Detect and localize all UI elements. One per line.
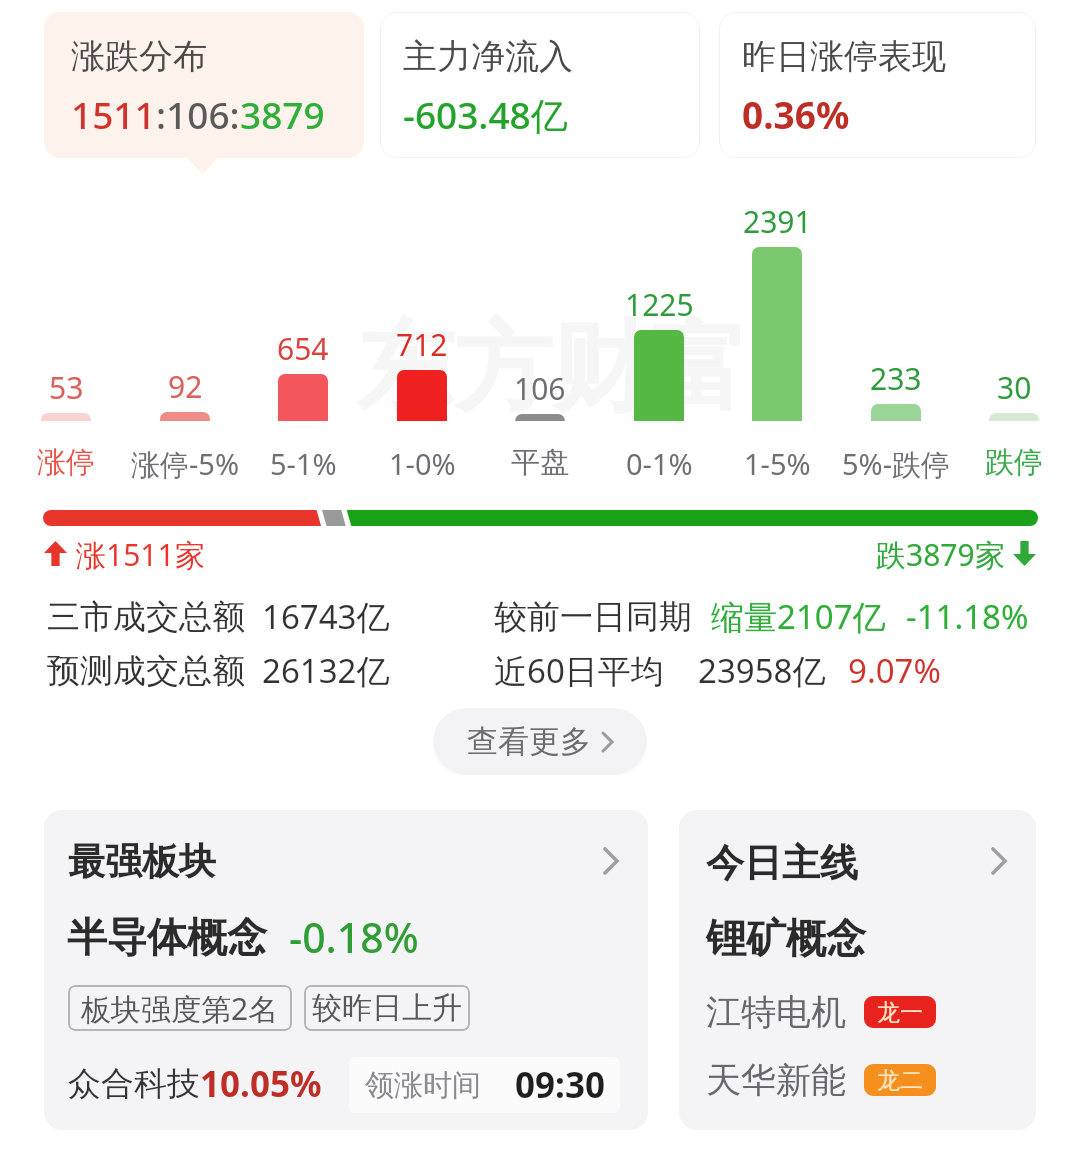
- staticText: 09:30: [515, 1061, 605, 1109]
- staticText: 查看更多: [467, 722, 591, 761]
- staticText: 0.36%: [742, 89, 850, 139]
- staticText: 涨跌分布: [71, 35, 207, 78]
- staticText: 龙二: [877, 1066, 923, 1095]
- staticText: 众合科技: [68, 1063, 200, 1105]
- staticText: 3879: [240, 89, 325, 139]
- staticText: 预测成交总额: [47, 650, 245, 692]
- staticText: 16743亿: [262, 594, 390, 639]
- button[interactable]: 查看更多: [433, 708, 647, 775]
- button[interactable]: 今日主线: [679, 810, 1036, 1130]
- staticText: 较昨日上升: [312, 989, 462, 1027]
- button[interactable]: 主力净流入: [380, 12, 700, 158]
- staticText: 5-1%: [270, 444, 337, 480]
- staticText: 领涨时间: [365, 1067, 481, 1104]
- staticText: 较前一日同期: [494, 596, 692, 638]
- button[interactable]: 涨跌分布: [44, 12, 364, 158]
- staticText: 最强板块: [68, 838, 216, 885]
- button[interactable]: 最强板块: [44, 810, 648, 1130]
- staticText: 锂矿概念: [706, 913, 866, 963]
- staticText: 东方财富: [356, 307, 748, 430]
- staticText: 9.07%: [848, 648, 941, 693]
- button[interactable]: 今日主线详情: [979, 839, 1019, 883]
- staticText: 三市成交总额: [47, 596, 245, 638]
- staticText: 712: [396, 324, 448, 362]
- staticText: 天华新能: [706, 1058, 846, 1102]
- staticText: 近60日平均: [494, 648, 664, 693]
- staticText: 53: [49, 367, 84, 405]
- button[interactable]: 最强板块详情: [591, 839, 631, 883]
- staticText: -11.18%: [906, 594, 1029, 639]
- button[interactable]: 昨日涨停表现: [719, 12, 1036, 158]
- staticText: 106: [514, 368, 566, 406]
- staticText: 23958亿: [698, 648, 826, 693]
- staticText: 30: [997, 367, 1032, 405]
- staticText: 涨停-5%: [131, 444, 240, 480]
- staticText: 跌停: [985, 444, 1043, 480]
- staticText: 1225: [625, 284, 694, 322]
- staticText: 5%-跌停: [842, 444, 951, 480]
- staticText: 1-0%: [389, 444, 456, 480]
- staticText: 涨停: [37, 444, 95, 480]
- staticText: 江特电机: [706, 990, 846, 1034]
- staticText: 10.05%: [200, 1060, 322, 1108]
- staticText: 1511: [71, 89, 156, 139]
- staticText: 0-1%: [626, 444, 693, 480]
- staticText: 平盘: [511, 444, 569, 480]
- staticText: 233: [870, 358, 922, 396]
- staticText: 昨日涨停表现: [742, 35, 946, 78]
- staticText: 龙一: [877, 998, 923, 1027]
- staticText: 654: [277, 328, 329, 366]
- staticText: -0.18%: [289, 909, 419, 965]
- staticText: 26132亿: [262, 648, 390, 693]
- staticText: 92: [168, 366, 203, 404]
- staticText: 涨1511家: [76, 534, 205, 575]
- staticText: 今日主线: [706, 839, 858, 887]
- staticText: -603.48亿: [403, 89, 568, 140]
- staticText: 缩量2107亿: [711, 594, 886, 639]
- staticText: 板块强度第2名: [81, 988, 279, 1029]
- staticText: 2391: [743, 201, 812, 239]
- staticText: 1-5%: [744, 444, 811, 480]
- staticText: 半导体概念: [67, 912, 267, 962]
- staticText: :106:: [156, 89, 240, 139]
- staticText: 主力净流入: [403, 35, 573, 78]
- staticText: 跌3879家: [876, 534, 1005, 575]
